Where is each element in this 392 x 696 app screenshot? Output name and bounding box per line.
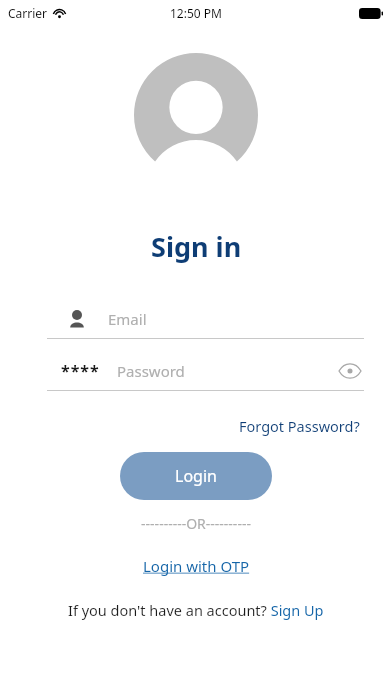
button[interactable]: Show password xyxy=(336,357,364,385)
staticText: Login xyxy=(175,465,217,487)
button[interactable]: Login xyxy=(120,452,272,500)
staticText: If you don't have an account? Sign Up xyxy=(68,600,324,620)
button[interactable]: Email xyxy=(47,302,364,339)
button[interactable]: Login with OTP xyxy=(139,552,254,580)
staticText: Login with OTP xyxy=(143,556,250,576)
button[interactable]: **** xyxy=(47,354,364,391)
button[interactable]: Forgot Password? xyxy=(235,412,364,440)
staticText: Carrier xyxy=(8,5,48,21)
staticText: 12:50 PM xyxy=(170,5,222,21)
staticText: Forgot Password? xyxy=(239,416,360,436)
staticText: Sign in xyxy=(151,228,242,265)
staticText: Password xyxy=(117,361,185,381)
button[interactable]: If you don't have an account? Sign Up xyxy=(64,596,328,624)
staticText: ----------OR---------- xyxy=(141,514,251,533)
staticText: Email xyxy=(108,309,147,329)
staticText: **** xyxy=(61,360,100,382)
